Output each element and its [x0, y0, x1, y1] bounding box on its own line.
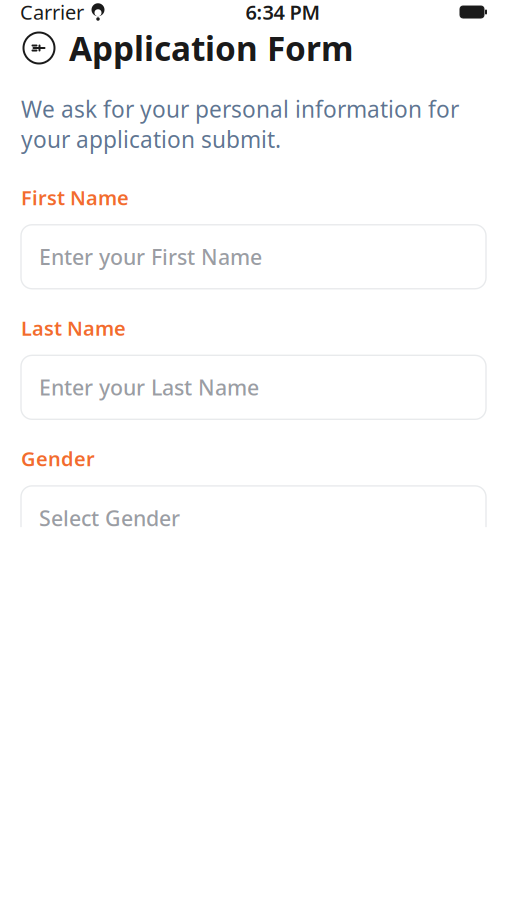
staticText: Last Name: [21, 315, 126, 341]
button[interactable]: Back: [21, 30, 57, 66]
button[interactable]: Select Gender: [21, 486, 486, 550]
staticText: We ask for your personal information for…: [21, 94, 459, 154]
button[interactable]: Enter your Last Name: [21, 355, 486, 419]
staticText: Carrier: [20, 0, 84, 25]
staticText: Enter your Last Name: [39, 373, 259, 401]
staticText: Gender: [21, 445, 95, 472]
staticText: Application Form: [69, 26, 354, 70]
staticText: Enter your First Name: [39, 243, 262, 271]
staticText: First Name: [21, 184, 129, 211]
button[interactable]: Enter your First Name: [21, 225, 486, 289]
staticText: Select Gender: [39, 504, 180, 532]
staticText: 6:34 PM: [245, 0, 320, 25]
